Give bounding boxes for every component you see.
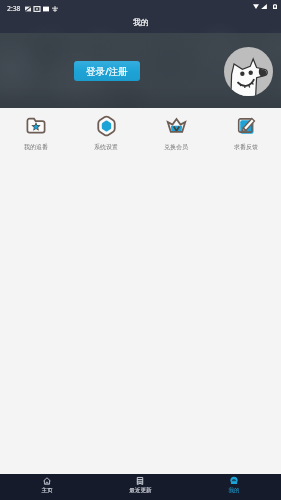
staticText: 我的	[228, 487, 240, 494]
button[interactable]: User avatar	[224, 47, 273, 96]
staticText: 我的	[133, 17, 149, 27]
button[interactable]: 系统设置	[71, 108, 141, 155]
button[interactable]: 求番反馈	[211, 108, 281, 155]
staticText: 我的追番	[24, 143, 48, 151]
button[interactable]: 我的追番	[0, 108, 71, 155]
staticText: 求番反馈	[234, 143, 258, 151]
button[interactable]: 我的	[187, 474, 281, 500]
staticText: 2:38	[7, 4, 21, 13]
button[interactable]: 兑换会员	[141, 108, 211, 155]
button[interactable]: 主页	[0, 474, 93, 500]
button[interactable]: 最近更新	[93, 474, 187, 500]
button[interactable]: 登录/注册	[74, 61, 140, 81]
staticText: 最近更新	[129, 487, 152, 494]
staticText: 兑换会员	[164, 143, 188, 151]
staticText: 系统设置	[94, 143, 118, 151]
staticText: 登录/注册	[86, 65, 128, 78]
staticText: 主页	[41, 487, 53, 494]
